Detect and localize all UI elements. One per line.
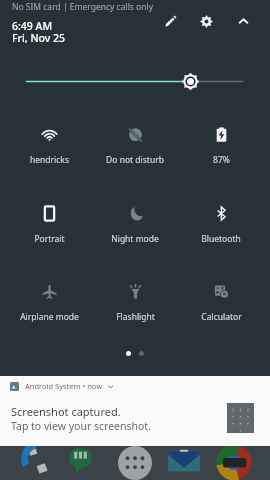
button[interactable]: Calculator	[178, 275, 264, 323]
staticText: Bluetooth	[201, 233, 241, 245]
button[interactable]: Airplane mode	[6, 275, 92, 323]
staticText: No SIM card | Emergency calls only	[12, 1, 154, 13]
button[interactable]: Portrait	[6, 197, 92, 245]
staticText: Tap to view your screenshot.	[11, 419, 151, 433]
staticText: Fri, Nov 25	[12, 31, 66, 45]
button[interactable]: Bluetooth	[178, 197, 264, 245]
button[interactable]: 87%	[178, 118, 264, 166]
button[interactable]: hendricks	[6, 118, 92, 166]
button[interactable]: Do not disturb	[92, 118, 178, 166]
button[interactable]: Android System • now	[0, 376, 270, 446]
staticText: Portrait	[34, 233, 65, 245]
button[interactable]: Night mode	[92, 197, 178, 245]
button[interactable]: Phone	[19, 447, 53, 480]
staticText: Calculator	[201, 311, 242, 323]
staticText: Airplane mode	[20, 311, 79, 323]
staticText: Night mode	[111, 233, 159, 245]
button[interactable]: Hangouts	[65, 447, 99, 480]
staticText: 87%	[213, 154, 230, 166]
button[interactable]	[0, 70, 270, 94]
button[interactable]: Apps	[118, 447, 152, 480]
button[interactable]: Chrome	[217, 447, 251, 480]
button[interactable]: Flashlight	[92, 275, 178, 323]
staticText: Android System • now	[25, 381, 103, 391]
staticText: 6:49 AM	[12, 19, 53, 33]
button[interactable]: Edit	[160, 10, 182, 32]
staticText: Flashlight	[116, 311, 155, 323]
staticText: hendricks	[30, 154, 69, 166]
button[interactable]: Gmail	[167, 447, 201, 480]
staticText: Do not disturb	[106, 154, 164, 166]
staticText: Screenshot captured.	[11, 404, 121, 419]
button[interactable]: Collapse	[232, 10, 254, 32]
button[interactable]: Settings	[195, 10, 217, 32]
